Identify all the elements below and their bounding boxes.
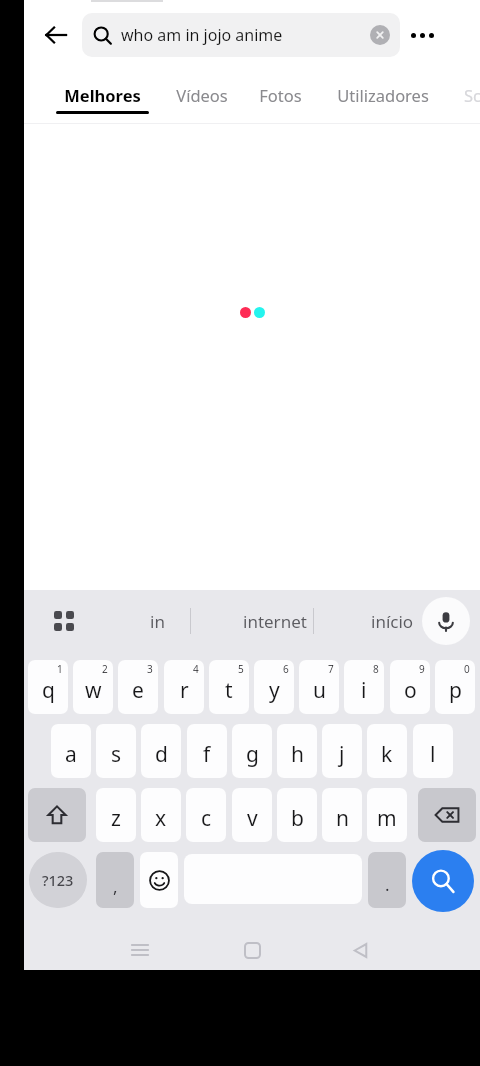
button[interactable]: ?123 [29,852,87,908]
staticText: t [225,676,233,705]
button[interactable]: Clear search [365,20,395,50]
button[interactable]: Keyboard toolbar [42,599,86,643]
staticText: b [291,804,304,833]
staticText: Fotos [259,84,302,106]
button[interactable]: p [435,660,475,714]
staticText: 8 [373,662,379,676]
button[interactable]: internet [220,594,330,648]
staticText: , [113,875,118,898]
staticText: z [111,804,121,833]
staticText: Sc [464,84,480,106]
staticText: k [381,740,393,769]
button[interactable]: b [277,788,317,842]
button[interactable]: Emoji [140,852,178,908]
button[interactable]: a [51,724,91,778]
button[interactable]: in [132,594,182,648]
button[interactable]: Recent apps [118,928,162,972]
staticText: u [313,676,326,705]
staticText: h [291,740,304,769]
button[interactable]: Vídeos [167,70,237,125]
button[interactable]: g [232,724,272,778]
button[interactable]: t [209,660,249,714]
button[interactable]: v [232,788,272,842]
staticText: in [150,610,165,633]
button[interactable]: Shift [28,788,86,842]
staticText: Melhores [64,84,141,106]
button[interactable]: Search [412,850,474,912]
button[interactable]: o [390,660,430,714]
staticText: 6 [283,662,289,676]
staticText: l [430,740,436,769]
button[interactable]: n [322,788,362,842]
button[interactable]: f [187,724,227,778]
button[interactable]: i [344,660,384,714]
button[interactable]: Backspace [418,788,476,842]
button[interactable]: Sc [457,70,480,125]
staticText: g [246,740,259,769]
staticText: x [155,804,167,833]
staticText: m [377,804,397,833]
button[interactable]: , [96,852,134,908]
button[interactable]: e [118,660,158,714]
button[interactable]: j [322,724,362,778]
staticText: q [42,676,55,705]
staticText: w [85,676,102,705]
button[interactable]: y [254,660,294,714]
button[interactable]: who am in jojo anime [82,13,400,57]
staticText: f [203,740,211,769]
button[interactable]: More options [400,13,444,57]
staticText: a [65,740,77,769]
staticText: 9 [419,662,425,676]
staticText: i [361,676,367,705]
staticText: d [155,740,168,769]
staticText: y [269,676,280,705]
staticText: r [180,676,189,705]
button[interactable]: q [28,660,68,714]
staticText: Vídeos [176,84,228,106]
button[interactable]: x [141,788,181,842]
staticText: 1 [57,662,63,676]
staticText: e [132,676,144,705]
button[interactable]: Home [230,928,274,972]
button[interactable]: Back [338,928,382,972]
button[interactable]: s [96,724,136,778]
staticText: n [336,804,349,833]
staticText: j [339,740,345,769]
staticText: c [201,804,212,833]
staticText: o [404,676,417,705]
button[interactable]: . [368,852,406,908]
button[interactable]: z [96,788,136,842]
staticText: s [111,740,122,769]
button[interactable]: u [299,660,339,714]
button[interactable]: d [141,724,181,778]
button[interactable]: r [164,660,204,714]
button[interactable]: l [413,724,453,778]
button[interactable]: m [367,788,407,842]
staticText: internet [243,610,307,633]
staticText: 5 [238,662,244,676]
staticText: Utilizadores [337,84,429,106]
button[interactable]: w [73,660,113,714]
staticText: 3 [147,662,153,676]
button[interactable]: Utilizadores [323,70,442,125]
staticText: 4 [193,662,199,676]
button[interactable]: k [367,724,407,778]
staticText: . [385,873,390,896]
staticText: 7 [328,662,334,676]
staticText: who am in jojo anime [121,24,283,46]
button[interactable]: Melhores [56,70,149,125]
button[interactable]: Fotos [252,70,308,125]
staticText: ?123 [42,870,74,890]
button[interactable]: Voice input [422,597,470,645]
button[interactable]: Back [34,13,78,57]
staticText: v [247,804,258,833]
staticText: início [371,610,414,633]
button[interactable]: c [186,788,226,842]
staticText: 2 [102,662,108,676]
button[interactable]: início [348,594,436,648]
button[interactable]: h [277,724,317,778]
staticText: p [449,676,462,705]
staticText: 0 [464,662,470,676]
